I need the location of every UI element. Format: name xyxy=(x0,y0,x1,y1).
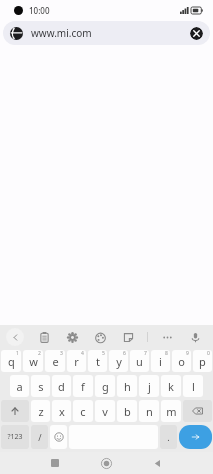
staticText: k xyxy=(168,379,174,394)
staticText: v xyxy=(102,404,108,419)
staticText: p xyxy=(199,354,206,369)
button[interactable]: Voice input xyxy=(186,328,204,346)
button[interactable]: r xyxy=(67,350,86,372)
staticText: w xyxy=(29,354,38,369)
staticText: . xyxy=(167,431,170,443)
staticText: e xyxy=(52,354,59,369)
staticText: j xyxy=(148,379,151,394)
button[interactable]: Clear xyxy=(190,27,203,40)
button[interactable]: v xyxy=(95,400,115,422)
button[interactable]: More xyxy=(158,328,176,346)
staticText: 8 xyxy=(165,350,168,357)
staticText: 6 xyxy=(123,350,126,357)
staticText: l xyxy=(192,379,195,394)
button[interactable]: Go xyxy=(179,425,212,449)
staticText: u xyxy=(136,354,143,369)
button[interactable]: Backspace xyxy=(183,400,212,422)
button[interactable]: Back xyxy=(146,452,168,474)
button[interactable]: i xyxy=(151,350,170,372)
button[interactable]: g xyxy=(95,375,115,397)
staticText: t xyxy=(96,354,100,369)
button[interactable]: Sticker xyxy=(119,328,137,346)
staticText: 1 xyxy=(16,350,19,357)
button[interactable]: . xyxy=(160,425,177,449)
staticText: f xyxy=(81,379,85,394)
staticText: 4 xyxy=(81,350,84,357)
button[interactable]: Settings xyxy=(63,328,81,346)
staticText: a xyxy=(16,379,23,394)
staticText: i xyxy=(159,354,162,369)
button[interactable]: y xyxy=(109,350,128,372)
staticText: 2 xyxy=(38,350,41,357)
button[interactable]: z xyxy=(31,400,50,422)
button[interactable]: p xyxy=(193,350,212,372)
staticText: o xyxy=(178,354,185,369)
button[interactable]: Clipboard xyxy=(35,328,53,346)
button[interactable]: Emoji xyxy=(50,425,67,449)
button[interactable]: u xyxy=(130,350,149,372)
button[interactable]: o xyxy=(172,350,191,372)
staticText: m xyxy=(166,404,177,419)
staticText: / xyxy=(38,431,42,443)
button[interactable]: ?123 xyxy=(1,425,29,449)
button[interactable]: m xyxy=(161,400,181,422)
staticText: q xyxy=(8,354,15,369)
other: Site info xyxy=(10,27,23,40)
staticText: d xyxy=(58,379,65,394)
staticText: 7 xyxy=(144,350,147,357)
button[interactable]: a xyxy=(10,375,29,397)
button[interactable]: b xyxy=(117,400,137,422)
staticText: 3 xyxy=(60,350,63,357)
button[interactable]: e xyxy=(45,350,65,372)
staticText: r xyxy=(74,354,79,369)
button[interactable]: j xyxy=(139,375,159,397)
staticText: n xyxy=(146,404,153,419)
button[interactable]: n xyxy=(139,400,159,422)
staticText: 5 xyxy=(102,350,105,357)
staticText: 10:00 xyxy=(29,5,50,16)
staticText: g xyxy=(102,379,109,394)
button[interactable]: k xyxy=(161,375,181,397)
staticText: www.mi.com xyxy=(31,26,190,40)
staticText: c xyxy=(80,404,86,419)
button[interactable]: q xyxy=(1,350,21,372)
staticText: 9 xyxy=(186,350,189,357)
button[interactable]: d xyxy=(52,375,71,397)
button[interactable]: t xyxy=(88,350,107,372)
button[interactable]: h xyxy=(117,375,137,397)
button[interactable]: Back xyxy=(6,328,24,346)
button[interactable]: Site info xyxy=(3,21,210,45)
button[interactable]: Recents xyxy=(44,452,66,474)
button[interactable]: Shift xyxy=(1,400,29,422)
staticText: z xyxy=(38,404,44,419)
button[interactable]: / xyxy=(31,425,48,449)
button[interactable]: l xyxy=(183,375,203,397)
staticText: ?123 xyxy=(7,432,23,442)
staticText: h xyxy=(124,379,131,394)
staticText: x xyxy=(59,404,65,419)
staticText: s xyxy=(38,379,44,394)
staticText: 0 xyxy=(207,350,210,357)
button[interactable]: x xyxy=(52,400,71,422)
button[interactable]: Theme xyxy=(91,328,109,346)
staticText: y xyxy=(116,354,122,369)
button[interactable]: w xyxy=(23,350,43,372)
button[interactable]: c xyxy=(73,400,93,422)
button[interactable]: f xyxy=(73,375,93,397)
button[interactable]: Home xyxy=(95,452,117,474)
button[interactable]: s xyxy=(31,375,50,397)
staticText: b xyxy=(124,404,131,419)
